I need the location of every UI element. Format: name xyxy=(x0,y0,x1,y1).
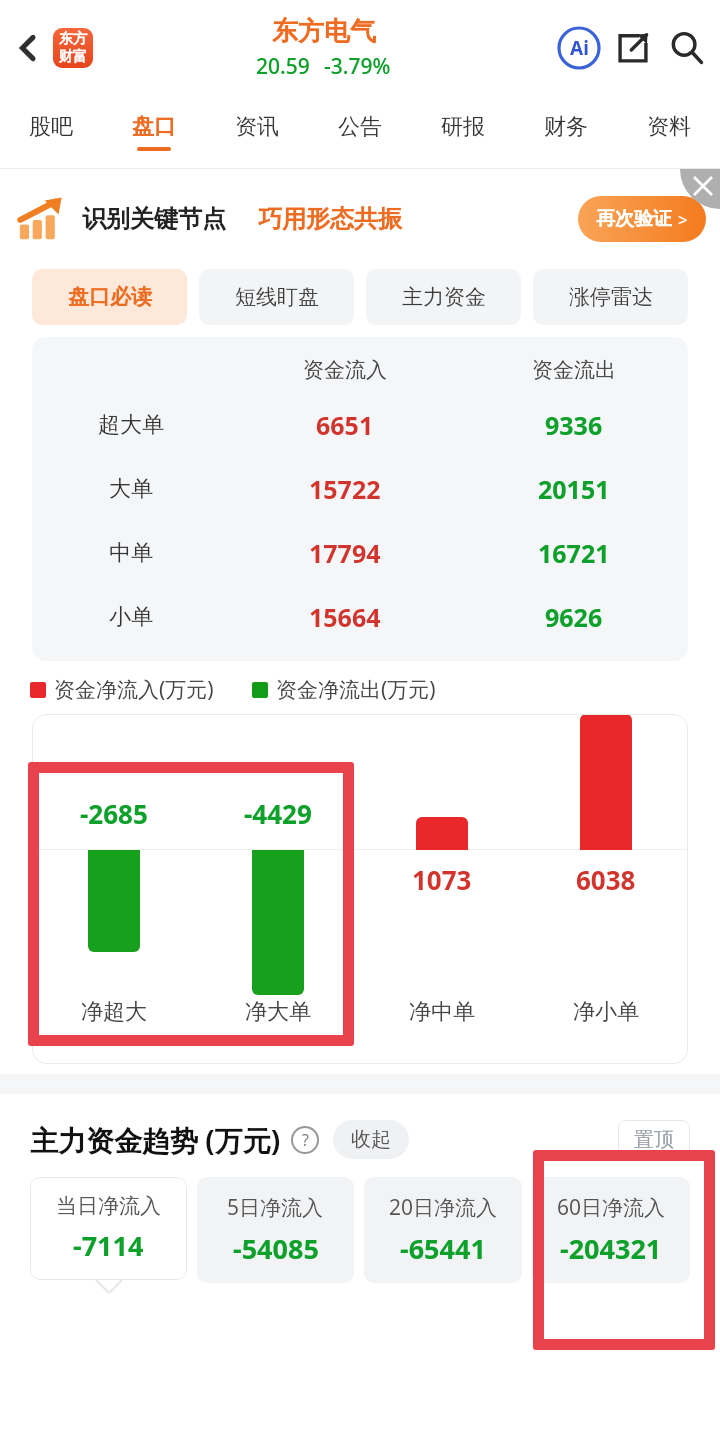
staticText: 中单 xyxy=(109,539,153,567)
staticText: 小单 xyxy=(109,603,153,631)
staticText: 主力资金趋势 (万元) xyxy=(30,1121,281,1159)
button[interactable]: 短线盯盘 xyxy=(199,269,354,325)
staticText: 9336 xyxy=(545,408,603,442)
staticText: 财富 xyxy=(59,48,87,66)
button[interactable]: Close ad xyxy=(680,169,720,209)
button[interactable]: 5日净流入 xyxy=(197,1177,354,1283)
staticText: 20日净流入 xyxy=(389,1193,498,1222)
button[interactable]: Help xyxy=(291,1126,319,1154)
staticText: 短线盯盘 xyxy=(235,284,319,310)
staticText: 资金流入 xyxy=(303,357,387,383)
staticText: 15664 xyxy=(309,600,381,634)
staticText: 净小单 xyxy=(573,998,639,1026)
button[interactable]: 盘口必读 xyxy=(32,269,187,325)
staticText: 资金净流入(万元) xyxy=(54,675,214,704)
staticText: 东方电气 xyxy=(272,15,376,48)
staticText: 60日净流入 xyxy=(557,1193,666,1222)
staticText: > xyxy=(678,208,688,231)
staticText: 超大单 xyxy=(98,411,164,439)
staticText: 再次验证 xyxy=(596,207,672,231)
staticText: 6651 xyxy=(316,408,374,442)
staticText: 资金净流出(万元) xyxy=(276,675,436,704)
staticText: ? xyxy=(302,1129,309,1151)
staticText: 20.59 xyxy=(256,52,310,81)
staticText: Ai xyxy=(570,35,589,61)
staticText: 5日净流入 xyxy=(227,1193,324,1222)
staticText: -54085 xyxy=(233,1230,319,1267)
staticText: -204321 xyxy=(560,1230,662,1267)
button[interactable]: 盘口 xyxy=(102,96,205,168)
staticText: 涨停雷达 xyxy=(569,284,653,310)
button[interactable]: Share xyxy=(606,21,660,75)
staticText: 资讯 xyxy=(235,113,279,141)
button[interactable]: Back xyxy=(6,26,50,70)
staticText: 股吧 xyxy=(29,113,73,141)
button[interactable]: Search xyxy=(660,21,714,75)
staticText: 大单 xyxy=(109,475,153,503)
button[interactable]: East Money home xyxy=(50,25,96,71)
staticText: -4429 xyxy=(244,796,312,831)
staticText: 20151 xyxy=(538,472,610,506)
button[interactable]: 资料 xyxy=(617,96,720,168)
staticText: 公告 xyxy=(338,113,382,141)
button[interactable]: 当日净流入 xyxy=(30,1177,187,1280)
button[interactable]: 财务 xyxy=(514,96,617,168)
staticText: 17794 xyxy=(309,536,381,570)
staticText: 6038 xyxy=(576,862,636,897)
staticText: 盘口 xyxy=(132,113,176,141)
staticText: 16721 xyxy=(538,536,610,570)
staticText: 当日净流入 xyxy=(56,1193,161,1219)
staticText: 研报 xyxy=(441,113,485,141)
staticText: -65441 xyxy=(400,1230,486,1267)
staticText: 财务 xyxy=(544,113,588,141)
staticText: 9626 xyxy=(545,600,603,634)
staticText: 1073 xyxy=(412,862,472,897)
staticText: 15722 xyxy=(309,472,381,506)
staticText: 盘口必读 xyxy=(68,284,152,310)
staticText: 东方 xyxy=(59,30,87,48)
staticText: 巧用形态共振 xyxy=(258,204,402,234)
button[interactable]: 公告 xyxy=(308,96,411,168)
button[interactable]: 60日净流入 xyxy=(532,1177,690,1283)
button[interactable]: 20日净流入 xyxy=(364,1177,522,1283)
staticText: 资料 xyxy=(647,113,691,141)
staticText: 置顶 xyxy=(634,1127,674,1152)
button[interactable]: 收起 xyxy=(333,1120,409,1159)
staticText: 净超大 xyxy=(81,998,147,1026)
button[interactable]: 研报 xyxy=(411,96,514,168)
staticText: -3.79% xyxy=(324,52,391,81)
staticText: 识别关键节点 xyxy=(82,204,226,234)
staticText: 收起 xyxy=(351,1127,391,1152)
button[interactable]: 再次验证 xyxy=(578,196,706,242)
staticText: -7114 xyxy=(73,1227,144,1264)
staticText: 净中单 xyxy=(409,998,475,1026)
staticText: -2685 xyxy=(80,796,148,831)
staticText: 资金流出 xyxy=(532,357,616,383)
button[interactable]: 资讯 xyxy=(205,96,308,168)
staticText: 净大单 xyxy=(245,998,311,1026)
button[interactable]: 涨停雷达 xyxy=(533,269,688,325)
button[interactable]: AI assistant xyxy=(552,21,606,75)
button[interactable]: 股吧 xyxy=(0,96,102,168)
staticText: 主力资金 xyxy=(402,284,486,310)
button[interactable]: 置顶 xyxy=(618,1120,690,1159)
button[interactable]: 主力资金 xyxy=(366,269,521,325)
